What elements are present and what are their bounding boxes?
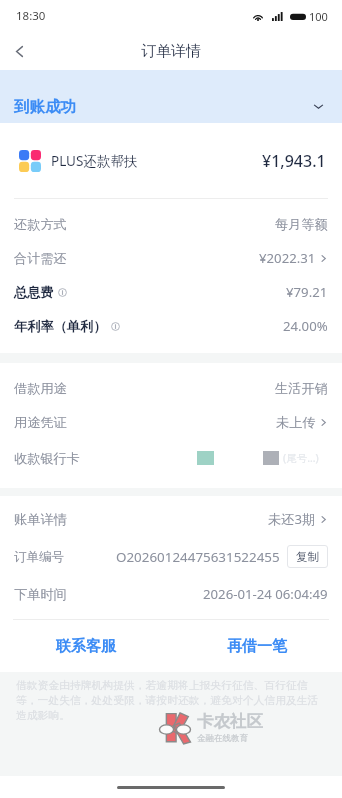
staticText: 下单时间 xyxy=(14,586,67,603)
staticText: ¥1,943.1 xyxy=(262,150,326,172)
button[interactable]: 还款方式 xyxy=(0,207,342,241)
staticText: 未还3期 xyxy=(268,510,316,528)
staticText: 24.00% xyxy=(283,317,328,335)
button[interactable]: 复制 xyxy=(287,545,328,568)
button[interactable]: 收款银行卡 xyxy=(0,439,342,477)
staticText: 借款资金由持牌机构提供，若逾期将上报央行征信、百行征信等，一处失信，处处受限，请… xyxy=(16,679,324,722)
staticText: 18:30 xyxy=(16,8,46,24)
staticText: 复制 xyxy=(296,550,319,564)
staticText: 订单详情 xyxy=(141,42,201,61)
staticText: 再借一笔 xyxy=(227,637,287,656)
button[interactable]: 总息费 xyxy=(0,275,342,309)
staticText: 2026-01-24 06:04:49 xyxy=(203,585,328,603)
staticText: O20260124475631522455 xyxy=(116,548,280,566)
staticText: 借款用途 xyxy=(14,380,67,397)
button[interactable]: 再借一笔 xyxy=(171,620,342,672)
button[interactable]: PLUS还款帮扶 xyxy=(0,123,342,198)
button[interactable]: 下单时间 xyxy=(0,577,342,611)
button[interactable]: 借款用途 xyxy=(0,371,342,405)
staticText: (尾号…) xyxy=(283,451,319,465)
staticText: PLUS还款帮扶 xyxy=(51,152,138,170)
button[interactable]: 账单详情 xyxy=(0,502,342,536)
staticText: 合计需还 xyxy=(14,250,67,267)
button[interactable]: 年利率（单利） xyxy=(0,309,342,343)
staticText: ¥79.21 xyxy=(286,283,328,301)
staticText: 用途凭证 xyxy=(14,414,67,431)
staticText: 卡农社区 xyxy=(197,711,263,732)
staticText: 年利率（单利） xyxy=(14,318,107,335)
staticText: 未上传 xyxy=(276,414,316,431)
staticText: 到账成功 xyxy=(14,97,76,117)
staticText: 100 xyxy=(309,9,328,24)
staticText: 账单详情 xyxy=(14,511,67,528)
staticText: 每月等额 xyxy=(275,216,328,233)
staticText: 还款方式 xyxy=(14,216,67,233)
button[interactable]: 用途凭证 xyxy=(0,405,342,439)
button[interactable]: 联系客服 xyxy=(0,620,171,672)
staticText: 总息费 xyxy=(14,284,54,301)
staticText: 收款银行卡 xyxy=(14,450,80,467)
staticText: 生活开销 xyxy=(275,380,328,397)
staticText: 订单编号 xyxy=(14,549,64,565)
button[interactable]: 合计需还 xyxy=(0,241,342,275)
staticText: ¥2022.31 xyxy=(259,249,316,267)
button[interactable]: Back xyxy=(0,32,38,70)
staticText: 金融在线教育 xyxy=(197,733,248,744)
button[interactable]: 到账成功 xyxy=(0,70,342,123)
staticText: 联系客服 xyxy=(56,637,116,656)
